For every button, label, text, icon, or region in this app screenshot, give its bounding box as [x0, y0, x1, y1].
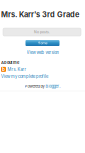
button[interactable]: View my complete profile [1, 74, 48, 79]
staticText: Home [37, 41, 47, 45]
button[interactable]: Blogger [45, 84, 59, 89]
staticText: No posts. [34, 30, 50, 34]
staticText: Blogger [45, 84, 59, 89]
staticText: b [2, 67, 5, 72]
staticText: Powered by [24, 84, 45, 89]
staticText: View my complete profile [1, 74, 48, 79]
staticText: About me [1, 60, 19, 65]
staticText: Mrs. Karr [7, 67, 26, 72]
staticText: View web version [26, 50, 58, 55]
button[interactable]: Home [25, 40, 59, 46]
button[interactable]: View web version [26, 50, 58, 55]
staticText: Mrs. Karr's 3rd Grade [1, 10, 79, 19]
